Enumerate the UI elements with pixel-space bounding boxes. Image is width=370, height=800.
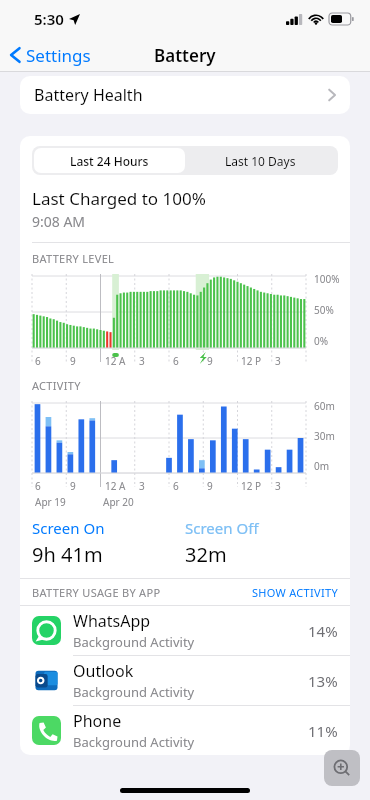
staticText: 6 (35, 354, 41, 368)
staticText: 12 P (241, 479, 262, 493)
staticText: 9h 41m (32, 541, 103, 568)
staticText: Last Charged to 100% (32, 187, 206, 210)
staticText: Background Activity (73, 733, 195, 751)
button[interactable]: Settings (0, 38, 99, 72)
staticText: 6 (35, 479, 41, 493)
staticText: Screen On (32, 518, 105, 538)
staticText: Battery (154, 44, 216, 67)
staticText: 13% (308, 671, 338, 691)
button[interactable]: Zoom (324, 750, 360, 786)
staticText: 3 (139, 354, 145, 368)
staticText: 9 (70, 479, 76, 493)
button[interactable]: WhatsApp (20, 606, 350, 656)
staticText: 12 A (105, 354, 126, 368)
staticText: 3 (139, 479, 145, 493)
staticText: Phone (73, 710, 122, 732)
staticText: 11% (308, 721, 338, 741)
staticText: Apr 20 (103, 495, 134, 509)
staticText: 100% (314, 272, 340, 286)
button[interactable]: Last 10 Days (185, 148, 336, 173)
staticText: Last 24 Hours (70, 153, 149, 169)
staticText: ACTIVITY (32, 378, 81, 393)
staticText: 6 (173, 354, 179, 368)
button[interactable]: Last 24 Hours (34, 148, 185, 173)
staticText: 9 (207, 479, 213, 493)
button[interactable]: Outlook (20, 656, 350, 706)
staticText: 32m (185, 541, 227, 568)
staticText: WhatsApp (73, 610, 151, 632)
staticText: 50% (314, 303, 334, 317)
button[interactable]: SHOW ACTIVITY (252, 585, 338, 600)
staticText: SHOW ACTIVITY (252, 585, 338, 600)
staticText: 12 A (105, 479, 126, 493)
staticText: 9 (207, 354, 213, 368)
staticText: 9:08 AM (32, 212, 86, 231)
button[interactable]: Phone (20, 706, 350, 755)
button[interactable]: Battery Health (20, 76, 350, 114)
staticText: Outlook (73, 660, 134, 682)
staticText: 14% (308, 621, 338, 641)
staticText: BATTERY USAGE BY APP (32, 585, 161, 600)
staticText: BATTERY LEVEL (32, 251, 115, 266)
staticText: 30m (314, 429, 335, 443)
staticText: 12 P (241, 354, 262, 368)
staticText: 9 (70, 354, 76, 368)
staticText: 60m (314, 399, 335, 413)
staticText: 0% (314, 334, 329, 348)
staticText: Background Activity (73, 633, 195, 651)
staticText: 0m (314, 459, 330, 473)
staticText: 5:30 (34, 9, 64, 29)
staticText: Last 10 Days (225, 153, 296, 169)
staticText: Battery Health (34, 84, 143, 106)
staticText: 3 (275, 479, 281, 493)
staticText: Background Activity (73, 683, 195, 701)
staticText: Apr 19 (35, 495, 66, 509)
staticText: 3 (275, 354, 281, 368)
staticText: Screen Off (185, 518, 259, 538)
staticText: Settings (26, 44, 91, 67)
staticText: 6 (173, 479, 179, 493)
